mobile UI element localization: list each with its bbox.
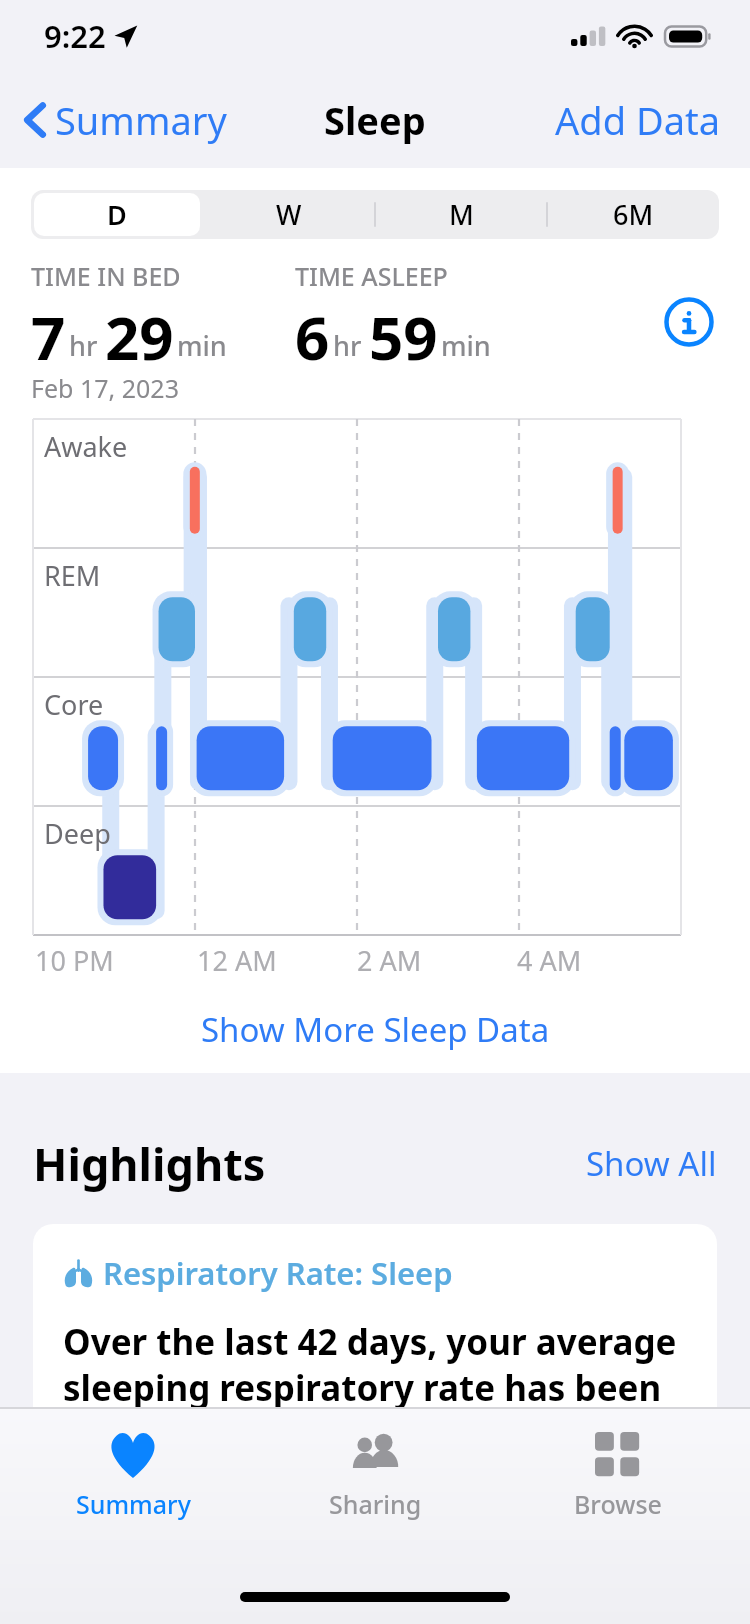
staticText: Over the last 42 days, your average slee… bbox=[63, 1318, 677, 1408]
button[interactable]: W bbox=[206, 193, 372, 236]
button[interactable]: Summary bbox=[23, 1432, 243, 1521]
button[interactable]: Add Data bbox=[555, 94, 720, 146]
button[interactable]: Show All bbox=[586, 1141, 717, 1186]
staticText: 12 AM bbox=[197, 942, 277, 979]
staticText: Summary bbox=[55, 94, 227, 146]
button[interactable]: Browse bbox=[508, 1432, 728, 1521]
staticText: W bbox=[276, 196, 302, 233]
staticText: 10 PM bbox=[35, 942, 114, 979]
staticText: Sleep bbox=[324, 94, 426, 146]
button[interactable]: D bbox=[34, 193, 200, 236]
staticText: 2 AM bbox=[357, 942, 422, 979]
staticText: min bbox=[177, 327, 227, 364]
staticText: 6 bbox=[295, 296, 330, 371]
staticText: 9:22 bbox=[44, 15, 106, 57]
staticText: min bbox=[441, 327, 491, 364]
staticText: Browse bbox=[574, 1487, 662, 1521]
staticText: 59 bbox=[369, 296, 438, 371]
staticText: Highlights bbox=[33, 1133, 266, 1194]
staticText: hr bbox=[69, 327, 98, 364]
button[interactable]: Respiratory Rate: Sleep bbox=[33, 1224, 717, 1408]
staticText: Summary bbox=[76, 1487, 191, 1521]
staticText: hr bbox=[333, 327, 362, 364]
staticText: REM bbox=[44, 557, 101, 594]
button[interactable]: Information about sleep data bbox=[664, 297, 714, 347]
staticText: Awake bbox=[44, 428, 128, 465]
button[interactable]: Summary bbox=[16, 94, 231, 146]
staticText: TIME ASLEEP bbox=[295, 259, 448, 293]
staticText: Deep bbox=[44, 815, 111, 852]
button[interactable]: Show More Sleep Data bbox=[0, 993, 750, 1065]
staticText: Sharing bbox=[329, 1487, 422, 1521]
staticText: 6M bbox=[613, 196, 654, 233]
staticText: Add Data bbox=[555, 94, 720, 146]
button[interactable]: 6M bbox=[550, 193, 716, 236]
staticText: Show More Sleep Data bbox=[201, 1007, 550, 1052]
staticText: Feb 17, 2023 bbox=[31, 371, 179, 405]
button[interactable]: Sharing bbox=[265, 1432, 485, 1521]
staticText: Show All bbox=[586, 1141, 717, 1186]
staticText: 4 AM bbox=[517, 942, 582, 979]
staticText: Core bbox=[44, 686, 104, 723]
staticText: D bbox=[107, 196, 127, 233]
staticText: M bbox=[449, 196, 474, 233]
staticText: 7 bbox=[31, 296, 66, 371]
staticText: 29 bbox=[105, 296, 174, 371]
staticText: TIME IN BED bbox=[31, 259, 181, 293]
button[interactable]: M bbox=[378, 193, 544, 236]
staticText: Respiratory Rate: Sleep bbox=[103, 1252, 453, 1294]
